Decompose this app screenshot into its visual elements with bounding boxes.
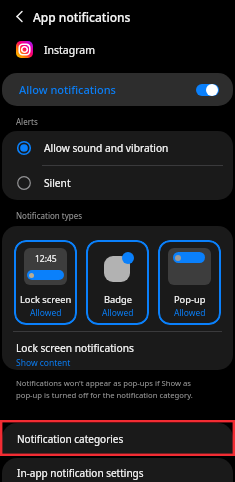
staticText: Notifications won't appear as pop-ups if… [16, 378, 193, 400]
staticText: Lock screen notifications [16, 341, 134, 355]
button[interactable]: Allow notifications [196, 84, 219, 96]
staticText: Notification types [16, 210, 83, 221]
staticText: Allow notifications [19, 82, 116, 97]
button[interactable]: 12:45 [14, 240, 77, 325]
button[interactable]: Silent [2, 166, 233, 200]
staticText: Allowed [102, 307, 134, 319]
staticText: Allowed [174, 307, 206, 319]
staticText: In-app notification settings [17, 466, 144, 480]
staticText: Allow sound and vibration [44, 141, 169, 155]
button[interactable]: In-app notification settings [2, 458, 233, 482]
button[interactable]: Navigate up [0, 0, 33, 33]
staticText: Notification categories [17, 432, 124, 446]
staticText: Silent [44, 176, 71, 190]
button[interactable]: Allow sound and vibration [2, 131, 233, 165]
button[interactable]: Instagram [0, 33, 235, 66]
staticText: Instagram [44, 43, 96, 57]
staticText: 12:45 [35, 253, 57, 265]
button[interactable]: Allow notifications [2, 73, 233, 106]
button[interactable]: Lock screen notifications [2, 332, 233, 369]
staticText: Pop-up [174, 293, 206, 306]
staticText: Allowed [30, 307, 62, 319]
staticText: Show content [16, 357, 71, 369]
staticText: Alerts [16, 116, 38, 127]
staticText: Lock screen [20, 293, 72, 306]
button[interactable]: Pop-up [158, 240, 221, 325]
button[interactable]: Notification categories [2, 423, 233, 454]
button[interactable]: Badge [86, 240, 149, 325]
staticText: App notifications [33, 9, 131, 25]
staticText: Badge [104, 293, 132, 306]
